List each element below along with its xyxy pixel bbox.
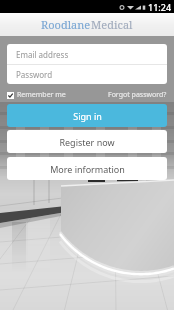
- button[interactable]: Sign in: [7, 104, 167, 127]
- staticText: Medical: [91, 17, 133, 32]
- staticText: Forgot password?: [108, 90, 167, 100]
- staticText: Register now: [59, 136, 115, 148]
- staticText: More information: [50, 163, 125, 175]
- staticText: Remember me: [17, 90, 66, 100]
- button[interactable]: Email address: [7, 44, 167, 64]
- button[interactable]: Password: [7, 65, 167, 84]
- button[interactable]: Remember me: [7, 90, 66, 100]
- staticText: Roodlane: [41, 17, 91, 32]
- staticText: 11:24: [148, 1, 172, 13]
- staticText: Sign in: [73, 110, 102, 122]
- staticText: Password: [16, 69, 53, 80]
- staticText: Email address: [16, 49, 69, 60]
- button[interactable]: Register now: [7, 130, 167, 153]
- button[interactable]: More information: [7, 157, 167, 180]
- button[interactable]: Forgot password?: [108, 90, 167, 100]
